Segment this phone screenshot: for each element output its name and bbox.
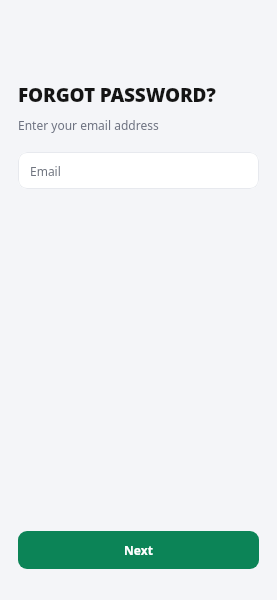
- button[interactable]: Email: [18, 152, 259, 189]
- staticText: FORGOT PASSWORD?: [18, 82, 216, 108]
- staticText: Enter your email address: [18, 117, 159, 133]
- staticText: Email: [30, 163, 61, 179]
- staticText: Next: [124, 542, 153, 558]
- button[interactable]: Next: [18, 531, 259, 569]
